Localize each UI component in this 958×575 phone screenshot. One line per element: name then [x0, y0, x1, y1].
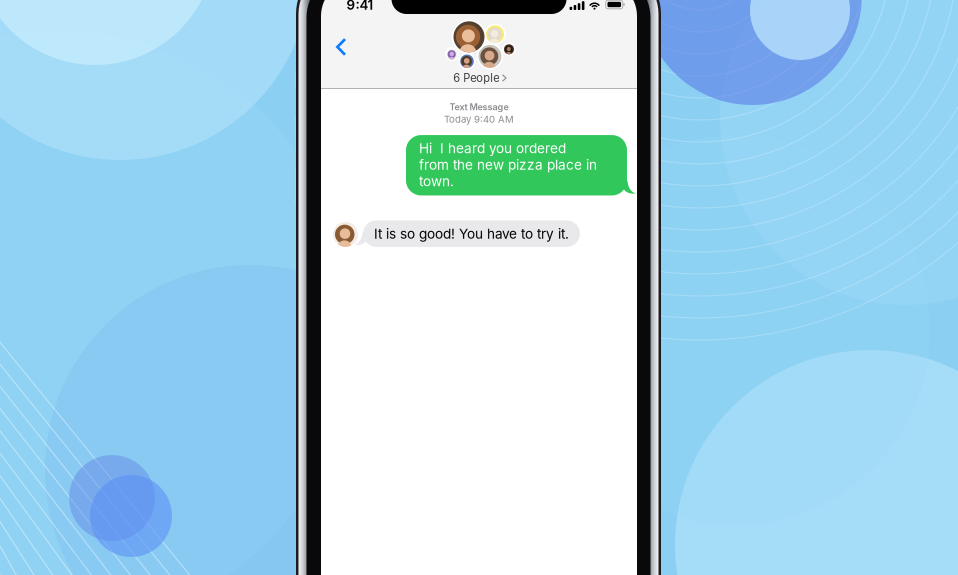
staticText: 9:41 [346, 0, 373, 13]
staticText: Today 9:40 AM [444, 113, 514, 125]
staticText: It is so good! You have to try it. [374, 225, 569, 242]
staticText: Hi I heard you ordered from the new pizz… [419, 140, 597, 189]
staticText: 6 People [453, 71, 499, 85]
button[interactable]: Back [324, 27, 358, 67]
staticText: Text Message [449, 101, 508, 112]
button[interactable]: 6 People [428, 17, 532, 85]
